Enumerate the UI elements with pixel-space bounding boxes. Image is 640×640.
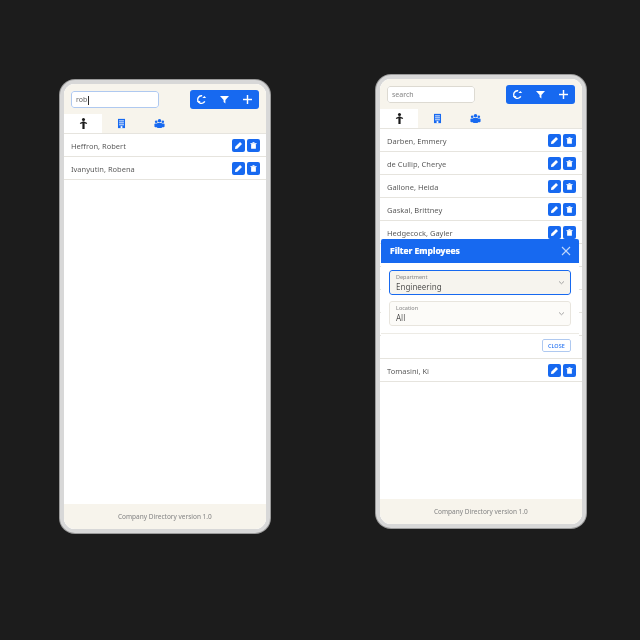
button[interactable]: Rumgay, Winonah [380,290,582,313]
button[interactable]: Maddocks, Elnore [380,244,582,267]
button[interactable]: Edit [548,226,561,239]
staticText: Tomasini, Ki [387,366,430,376]
staticText: search [392,90,414,100]
staticText: Gallone, Heida [387,182,439,192]
staticText: Filter Employees [390,245,460,257]
button[interactable]: Darben, Emmery [380,129,582,152]
button[interactable]: Filter [529,85,552,104]
staticText: Darben, Emmery [387,136,447,146]
staticText: Location [396,304,419,311]
button[interactable]: Delete [563,295,576,308]
button[interactable]: Delete [563,226,576,239]
button[interactable]: Delete [563,134,576,147]
staticText: CLOSE [548,342,565,349]
button[interactable]: Delete [563,249,576,262]
button[interactable]: Gaskal, Brittney [380,198,582,221]
staticText: Company Directory version 1.0 [118,512,212,521]
button[interactable]: Delete [563,180,576,193]
button[interactable]: People [380,109,418,128]
button[interactable]: Edit [548,341,561,354]
button[interactable]: Refresh [190,90,213,109]
button[interactable]: Edit [232,139,245,152]
staticText: de Cullip, Cherye [387,159,447,169]
button[interactable]: Edit [548,272,561,285]
staticText: Schimaschke, Nevile [387,320,459,330]
button[interactable]: Departments [418,109,456,128]
button[interactable]: Delete [563,272,576,285]
button[interactable]: St. Quintin, Taylor [380,336,582,359]
button[interactable]: Locations [140,114,178,133]
button[interactable]: Edit [548,134,561,147]
button[interactable]: Edit [548,364,561,377]
button[interactable]: Tomasini, Ki [380,359,582,382]
button[interactable]: Edit [548,180,561,193]
staticText: Rumgay, Winonah [387,297,452,307]
button[interactable]: Refresh [506,85,529,104]
button[interactable]: Filter [213,90,236,109]
staticText: Department [396,273,428,280]
button[interactable]: Edit [548,318,561,331]
button[interactable]: Delete [563,364,576,377]
button[interactable]: Edit [548,203,561,216]
staticText: Ivanyutin, Robena [71,164,135,174]
button[interactable]: People [64,114,102,133]
staticText: Engineering [396,281,442,292]
staticText: rob [76,95,88,105]
button[interactable]: Close [559,244,573,258]
button[interactable]: Delete [247,162,260,175]
button[interactable]: de Cullip, Cherye [380,152,582,175]
staticText: Company Directory version 1.0 [434,507,528,516]
button[interactable]: Schimaschke, Nevile [380,313,582,336]
button[interactable]: Delete [563,157,576,170]
staticText: Gaskal, Brittney [387,205,443,215]
button[interactable]: Locations [456,109,494,128]
button[interactable]: Department [389,270,571,295]
button[interactable]: Ivanyutin, Robena [64,157,266,180]
button[interactable]: Delete [563,341,576,354]
button[interactable]: Departments [102,114,140,133]
button[interactable]: Delete [563,203,576,216]
button[interactable]: Location [389,301,571,326]
staticText: Maddocks, Elnore [387,251,450,261]
button[interactable]: Gallone, Heida [380,175,582,198]
staticText: All [396,312,406,323]
button[interactable]: Edit [232,162,245,175]
button[interactable]: Edit [548,157,561,170]
button[interactable]: Delete [563,318,576,331]
button[interactable]: search [387,86,475,103]
button[interactable]: Delete [247,139,260,152]
button[interactable]: rob [71,91,159,108]
button[interactable]: CLOSE [542,339,571,352]
staticText: Hedgecock, Gayler [387,228,453,238]
button[interactable]: Hedgecock, Gayler [380,221,582,244]
staticText: Heffron, Robert [71,141,126,151]
staticText: Parsons, Cass [387,274,436,284]
button[interactable]: Parsons, Cass [380,267,582,290]
button[interactable]: Add [236,90,259,109]
button[interactable]: Heffron, Robert [64,134,266,157]
button[interactable]: Edit [548,295,561,308]
button[interactable]: Add [552,85,575,104]
